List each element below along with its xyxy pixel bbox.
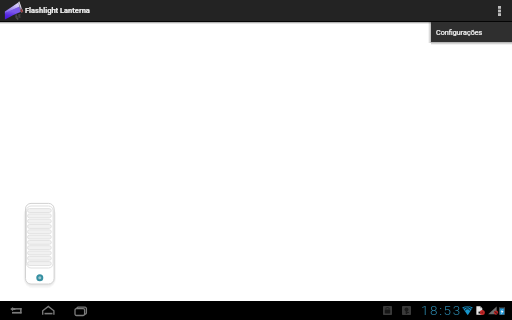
button[interactable]: More options — [490, 0, 512, 21]
button[interactable]: Screen lock notification — [383, 306, 392, 315]
staticText: Configurações — [436, 28, 483, 36]
button[interactable]: Recents — [62, 301, 94, 320]
button[interactable]: Back — [0, 301, 30, 320]
button[interactable]: Notification — [402, 306, 411, 315]
button[interactable]: Configurações — [431, 22, 512, 42]
staticText: 18:53 — [421, 302, 462, 318]
staticText: Flashlight Lanterna — [25, 6, 90, 15]
button[interactable]: Home — [30, 301, 62, 320]
